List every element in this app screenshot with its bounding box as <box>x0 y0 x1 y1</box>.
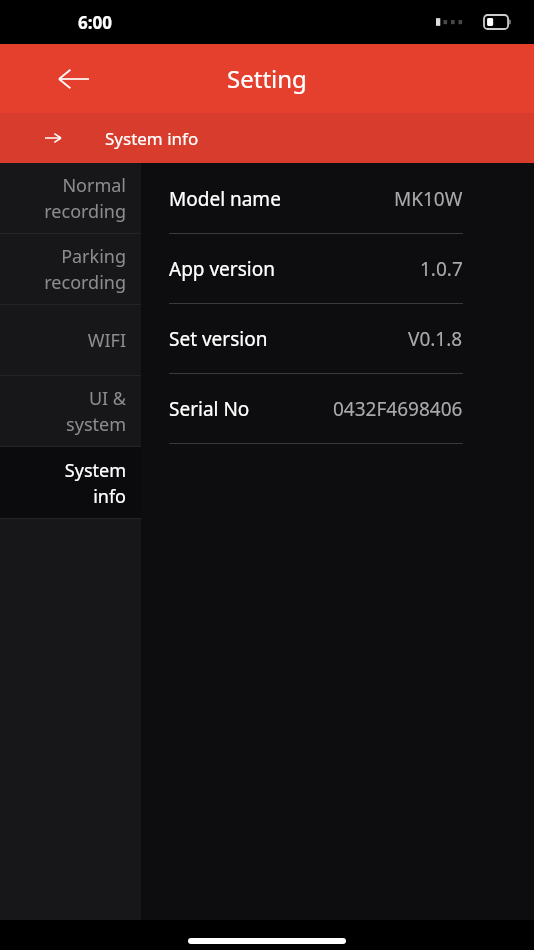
button[interactable]: App version <box>141 234 534 303</box>
button[interactable]: System info <box>0 113 534 163</box>
staticText: Normal recording <box>44 173 126 223</box>
staticText: System info <box>64 458 126 508</box>
staticText: Serial No <box>169 396 250 422</box>
staticText: 6:00 <box>78 11 112 34</box>
button[interactable]: UI & system <box>0 376 141 446</box>
button[interactable]: Serial No <box>141 374 534 443</box>
staticText: App version <box>169 256 275 282</box>
staticText: WIFI <box>87 328 126 353</box>
staticText: Parking recording <box>44 244 126 294</box>
button[interactable]: WIFI <box>0 305 141 375</box>
staticText: Model name <box>169 186 281 212</box>
staticText: 0432F4698406 <box>333 396 463 422</box>
staticText: Setting <box>227 62 307 95</box>
button[interactable]: Back <box>52 57 96 101</box>
button[interactable]: System info <box>0 447 141 518</box>
button[interactable]: Model name <box>141 164 534 233</box>
staticText: System info <box>105 127 199 150</box>
staticText: 1.0.7 <box>420 256 463 282</box>
staticText: Set version <box>169 326 268 352</box>
button[interactable]: Set version <box>141 304 534 373</box>
staticText: MK10W <box>394 186 463 212</box>
button[interactable]: Parking recording <box>0 234 141 304</box>
staticText: UI & system <box>66 386 126 436</box>
staticText: V0.1.8 <box>408 326 463 352</box>
button[interactable]: Normal recording <box>0 163 141 233</box>
